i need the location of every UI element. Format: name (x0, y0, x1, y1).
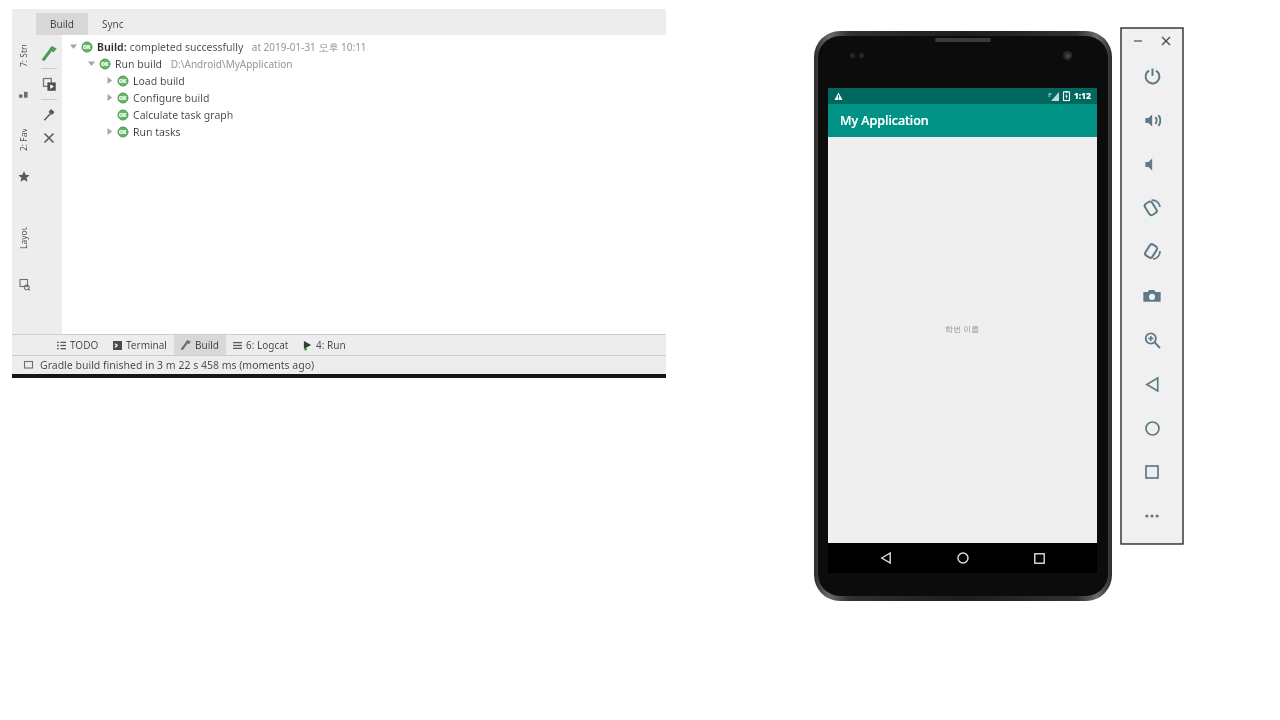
staticText: Terminal (126, 338, 167, 352)
button[interactable]: Back (867, 543, 905, 573)
staticText: 6: Logcat (246, 338, 289, 352)
button[interactable]: Back (1123, 362, 1181, 406)
staticText: OK (83, 44, 91, 51)
staticText: Run build (115, 57, 163, 71)
staticText: 1:12 (1074, 90, 1091, 102)
staticText: 7: Structure (18, 45, 30, 67)
staticText: Run tasks (133, 125, 181, 139)
button[interactable]: Overview (1123, 450, 1181, 494)
staticText: Calculate task graph (133, 108, 234, 122)
staticText: Layout Captures (18, 227, 30, 249)
staticText: TODO (70, 338, 99, 352)
button[interactable]: OK (62, 89, 666, 106)
button[interactable]: Rotate left (1123, 186, 1181, 230)
button[interactable]: Volume down (1123, 142, 1181, 186)
staticText: OK (119, 95, 127, 102)
button[interactable]: Sync (88, 13, 138, 35)
button[interactable]: TODO (50, 335, 106, 355)
staticText: Build (50, 17, 74, 31)
button[interactable]: Power (1123, 54, 1181, 98)
button[interactable]: Rotate right (1123, 230, 1181, 274)
button[interactable]: Minimize (1128, 31, 1148, 51)
button[interactable]: Terminal (106, 335, 174, 355)
button[interactable]: Close (38, 127, 60, 149)
button[interactable]: Build (174, 335, 226, 355)
button[interactable]: Pin (38, 103, 60, 125)
button[interactable]: OK (62, 55, 666, 72)
staticText: My Application (840, 112, 929, 129)
staticText: completed successfully (127, 40, 244, 54)
button[interactable]: 4: Run (296, 335, 353, 355)
button[interactable]: Build (36, 13, 88, 35)
button[interactable]: More (1123, 494, 1181, 538)
button[interactable]: OK (62, 38, 666, 55)
staticText: Build (195, 338, 219, 352)
button[interactable]: 6: Logcat (226, 335, 296, 355)
staticText: OK (101, 61, 109, 68)
staticText: 학번 이름 (945, 323, 980, 334)
staticText: Gradle build finished in 3 m 22 s 458 ms… (40, 358, 315, 372)
staticText: D:\Android\MyApplication (163, 57, 293, 71)
button[interactable]: Zoom (1123, 318, 1181, 362)
button[interactable]: OK (62, 123, 666, 140)
button[interactable]: Volume up (1123, 98, 1181, 142)
button[interactable]: Home (1123, 406, 1181, 450)
staticText: Build: (97, 40, 127, 54)
staticText: Load build (133, 74, 185, 88)
staticText: at 2019-01-31 오후 10:11 (244, 40, 367, 54)
staticText: 2: Favorites (18, 129, 30, 151)
staticText: Sync (102, 17, 124, 31)
button[interactable]: Recents (1020, 543, 1058, 573)
button[interactable]: Close (1156, 31, 1176, 51)
staticText: Configure build (133, 91, 210, 105)
staticText: OK (119, 129, 127, 136)
staticText: OK (119, 112, 127, 119)
button[interactable]: OK (62, 106, 666, 123)
staticText: OK (119, 78, 127, 85)
button[interactable]: Home (944, 543, 982, 573)
button[interactable]: Build (37, 41, 61, 65)
staticText: 4: Run (316, 338, 346, 352)
button[interactable]: Rerun (37, 72, 61, 96)
button[interactable]: OK (62, 72, 666, 89)
button[interactable]: Take screenshot (1123, 274, 1181, 318)
